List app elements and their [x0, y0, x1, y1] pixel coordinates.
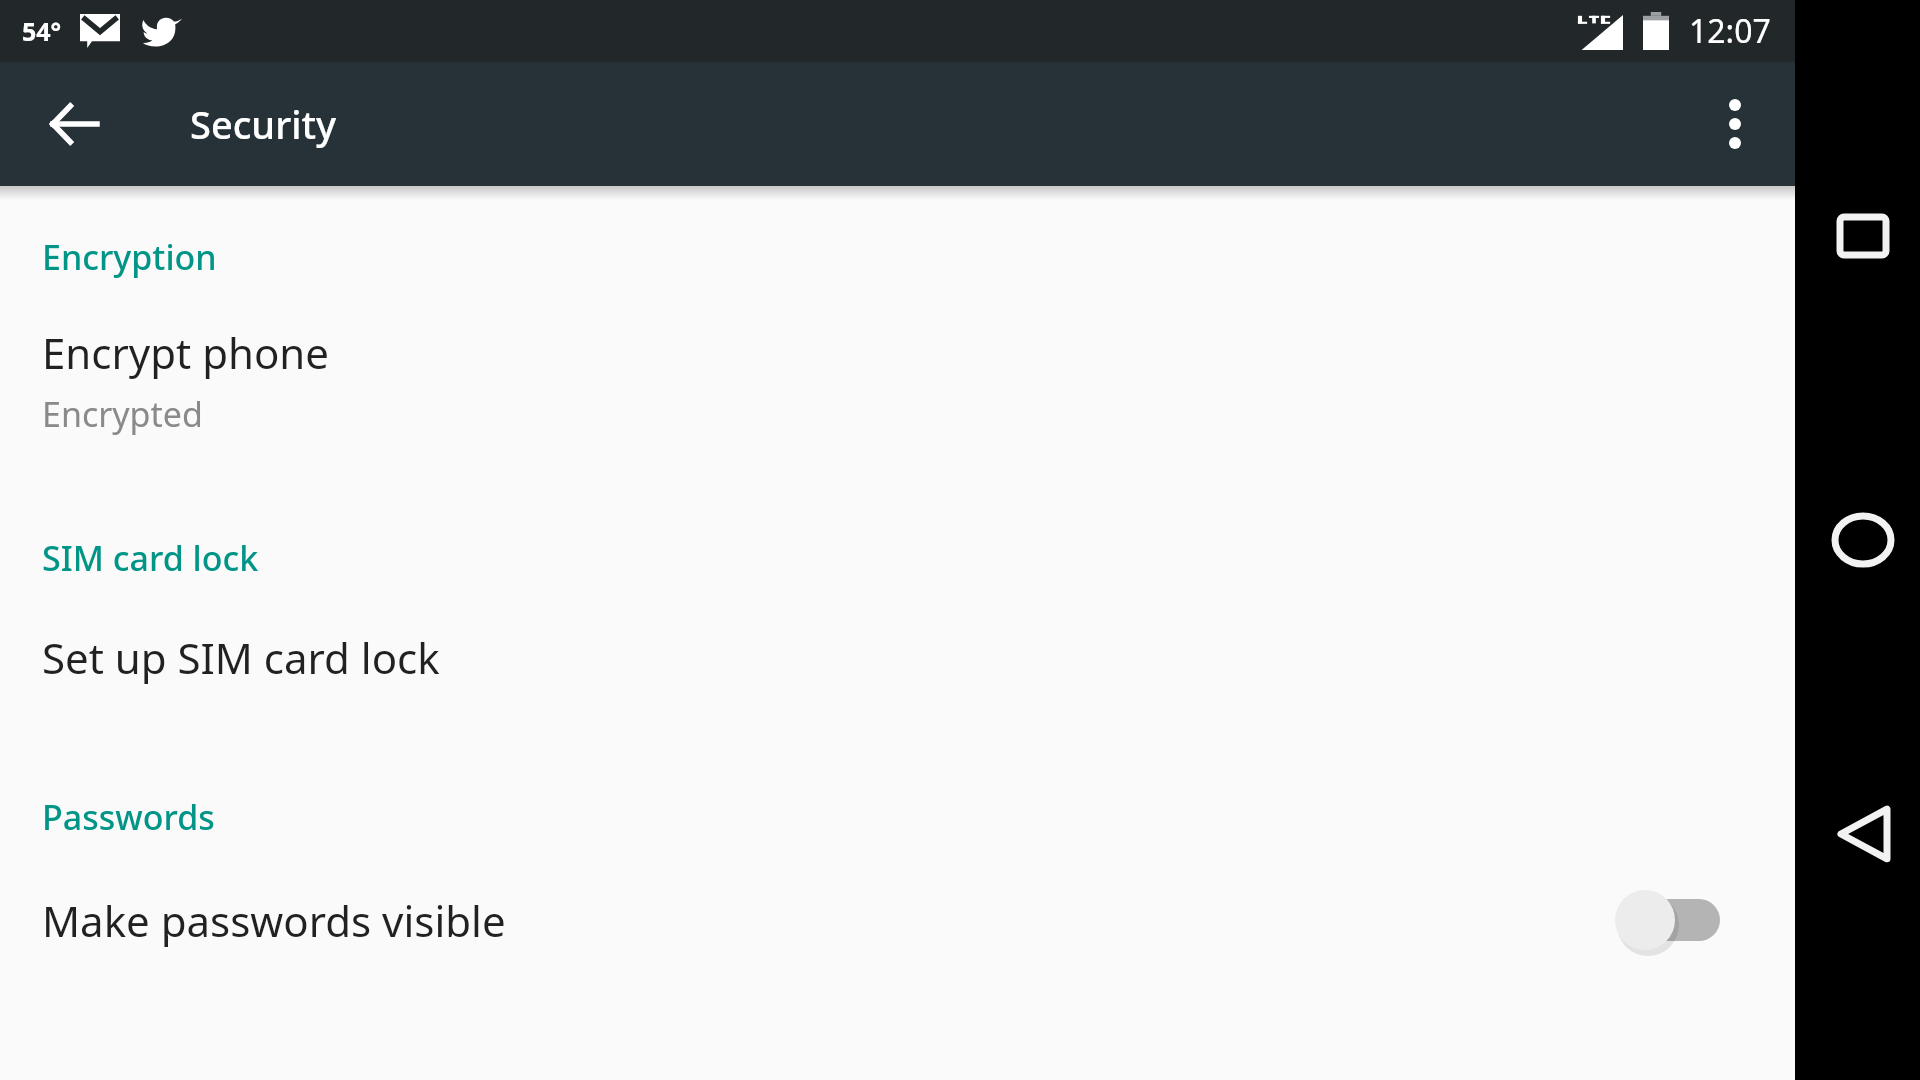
staticText: Encryption — [42, 234, 217, 280]
button[interactable]: Make passwords visible — [0, 888, 1795, 952]
staticText: Encrypted — [42, 391, 203, 437]
staticText: Set up SIM card lock — [42, 629, 440, 686]
staticText: SIM card lock — [42, 535, 259, 581]
button[interactable]: Set up SIM card lock — [0, 629, 1795, 686]
staticText: Passwords — [42, 794, 215, 840]
staticText: 12:07 — [1689, 9, 1771, 53]
staticText: Make passwords visible — [42, 892, 1613, 949]
button[interactable]: Recent apps — [1815, 188, 1911, 284]
staticText: Encrypt phone — [42, 324, 329, 381]
button[interactable]: More options — [1687, 76, 1783, 172]
button[interactable]: Navigate up — [26, 76, 122, 172]
button[interactable]: Encrypt phone — [0, 324, 1795, 437]
staticText: 54° — [22, 14, 62, 48]
staticText: Security — [190, 98, 337, 150]
button[interactable]: Home — [1815, 492, 1911, 588]
button[interactable]: Back — [1815, 786, 1911, 882]
